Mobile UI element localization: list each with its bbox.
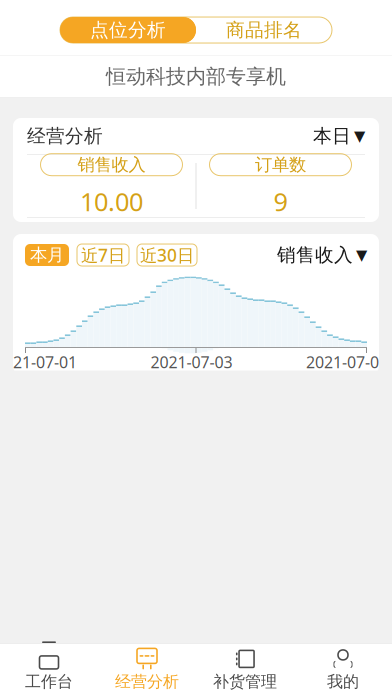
staticText: 9 [273, 185, 287, 218]
staticText: 2021-07-03 [150, 351, 232, 373]
button[interactable]: 销售收入 [277, 243, 367, 266]
button[interactable]: 本日 [313, 124, 365, 147]
button[interactable]: 点位分析 [60, 17, 196, 43]
staticText: 点位分析 [90, 18, 166, 41]
staticText: 2021-07-0 [306, 351, 379, 373]
button[interactable]: 商品排名 [196, 17, 332, 43]
button[interactable]: 经营分析 [98, 645, 196, 695]
button[interactable]: 本月 [25, 244, 69, 266]
staticText: 销售收入 [277, 243, 353, 266]
staticText: 近30日 [140, 243, 194, 266]
button[interactable]: 补货管理 [196, 645, 294, 695]
staticText: 10.00 [80, 185, 143, 218]
staticText: 商品排名 [226, 18, 302, 41]
staticText: 经营分析 [115, 672, 179, 692]
button[interactable]: 工作台 [0, 645, 98, 695]
staticText: 订单数 [255, 154, 306, 175]
staticText: 经营分析 [27, 124, 103, 147]
staticText: 本日 [313, 124, 351, 147]
staticText: 点位分析 [90, 18, 166, 41]
staticText: 销售收入 [77, 154, 145, 175]
staticText: 本月 [30, 244, 64, 266]
staticText: 补货管理 [213, 672, 277, 692]
button[interactable]: 近7日 [77, 244, 129, 266]
staticText: ▼ [356, 247, 367, 263]
staticText: 恒动科技内部专享机 [106, 64, 286, 89]
staticText: 近7日 [81, 243, 125, 266]
staticText: 工作台 [25, 672, 73, 692]
staticText: ▼ [354, 128, 365, 144]
button[interactable]: 近30日 [137, 244, 197, 266]
staticText: 我的 [327, 672, 359, 692]
button[interactable]: 我的 [294, 645, 392, 695]
staticText: 21-07-01 [13, 351, 77, 373]
